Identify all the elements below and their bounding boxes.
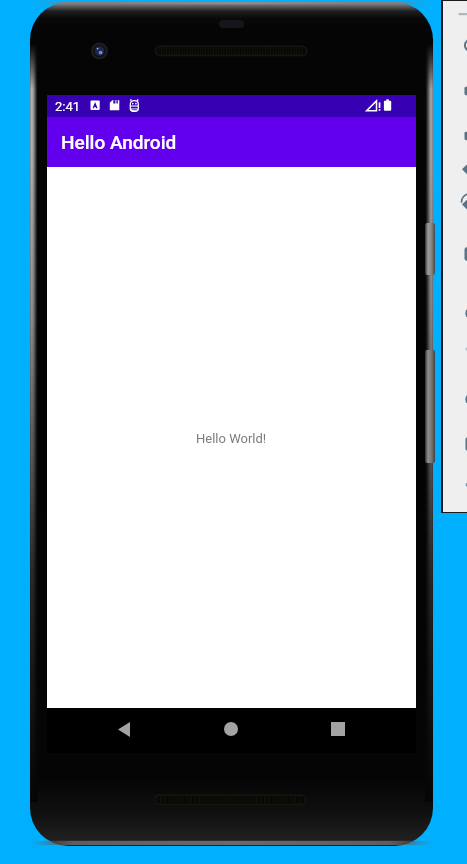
button[interactable]: Home bbox=[209, 719, 253, 739]
button[interactable]: Recent apps bbox=[316, 719, 360, 739]
staticText: Hello Android bbox=[61, 131, 177, 153]
button[interactable]: Back bbox=[102, 719, 146, 739]
staticText: 2:41 bbox=[55, 99, 81, 114]
staticText: Hello World! bbox=[196, 431, 267, 446]
button[interactable]: Emulator controls bbox=[443, 1, 467, 512]
